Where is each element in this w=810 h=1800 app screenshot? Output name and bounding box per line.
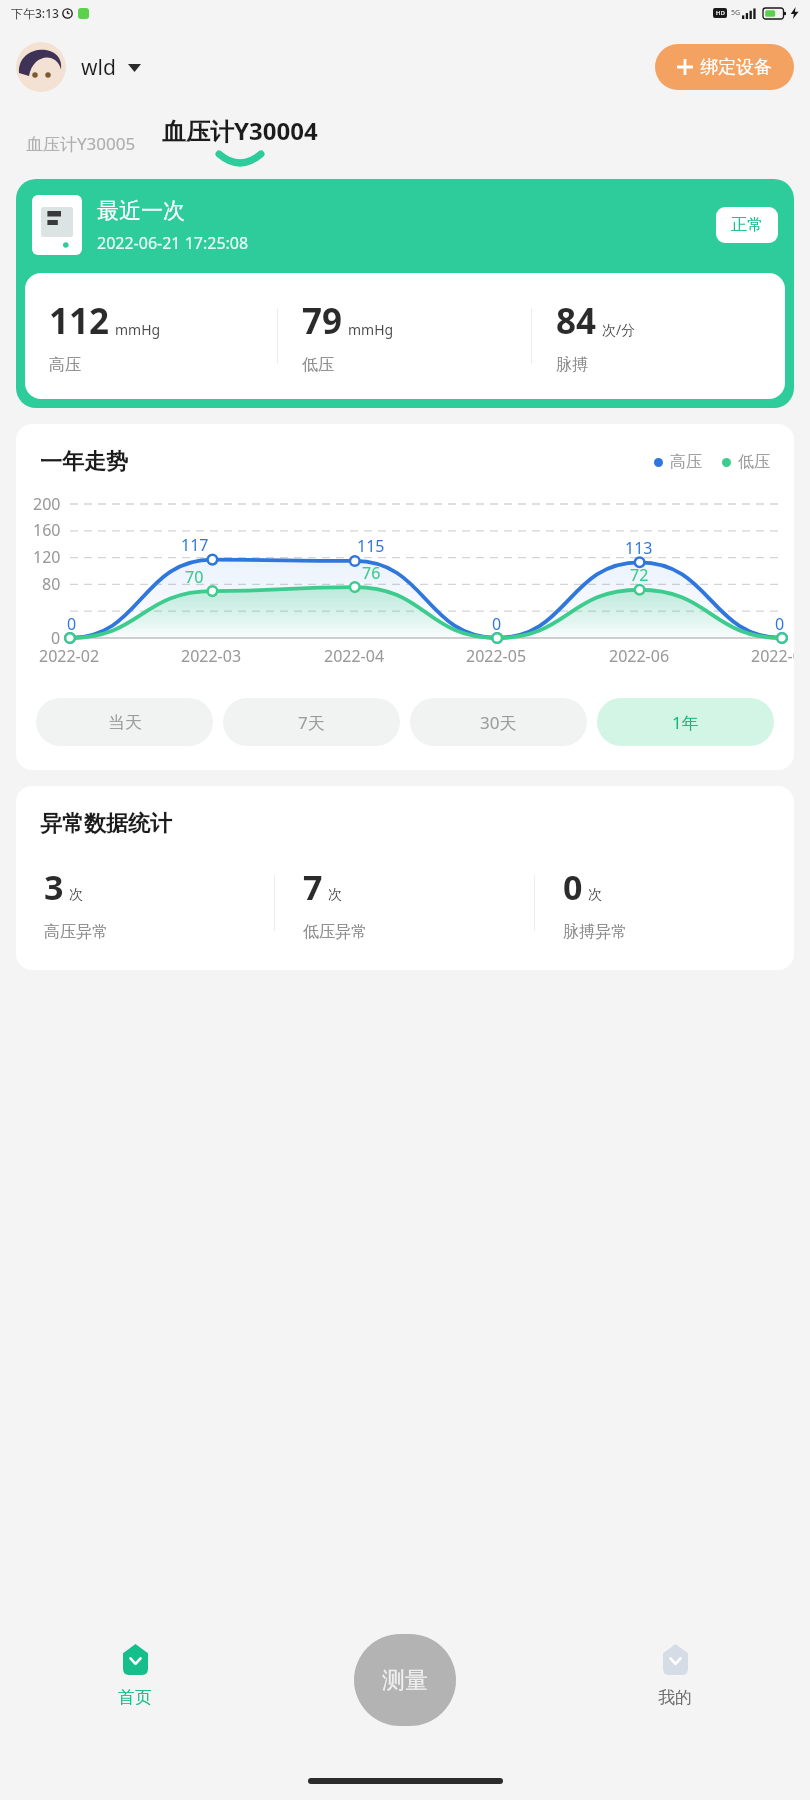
- staticText: 160: [33, 519, 61, 541]
- staticText: 当天: [108, 712, 142, 733]
- staticText: 120: [33, 546, 61, 568]
- staticText: 最近一次: [97, 197, 185, 225]
- button[interactable]: 最近一次: [16, 179, 794, 408]
- staticText: 3: [44, 864, 64, 910]
- staticText: 异常数据统计: [40, 810, 172, 838]
- staticText: 7天: [298, 711, 325, 734]
- staticText: 115: [357, 535, 385, 557]
- staticText: 次/分: [602, 320, 636, 339]
- staticText: 5G: [731, 8, 741, 18]
- staticText: 一年走势: [40, 448, 128, 476]
- staticText: 0: [563, 864, 583, 910]
- button[interactable]: 测量: [354, 1634, 456, 1726]
- staticText: 首页: [118, 1687, 152, 1708]
- staticText: mmHg: [115, 320, 161, 339]
- staticText: 80: [42, 573, 61, 595]
- staticText: 0: [51, 627, 61, 649]
- staticText: 正常: [731, 215, 763, 235]
- staticText: 0: [67, 613, 77, 635]
- staticText: 30天: [480, 711, 517, 734]
- button[interactable]: 当天: [36, 698, 213, 746]
- button[interactable]: 我的: [540, 1644, 810, 1708]
- button[interactable]: 绑定设备: [655, 44, 794, 90]
- staticText: 0: [492, 613, 502, 635]
- staticText: 2022-03: [181, 645, 242, 667]
- staticText: 84: [556, 297, 597, 345]
- staticText: 72: [630, 564, 649, 586]
- staticText: 112: [49, 297, 110, 345]
- staticText: 2022-05: [466, 645, 527, 667]
- staticText: 高压: [49, 355, 81, 375]
- staticText: 0: [775, 613, 785, 635]
- staticText: 2022-04: [324, 645, 385, 667]
- staticText: 70: [185, 566, 204, 588]
- staticText: 1年: [672, 711, 699, 734]
- staticText: 2022-07: [751, 645, 794, 667]
- button[interactable]: wld: [81, 53, 141, 82]
- button[interactable]: 血压计Y30004: [162, 114, 318, 163]
- staticText: 200: [33, 493, 61, 515]
- staticText: 测量: [382, 1666, 428, 1695]
- staticText: HD: [716, 9, 725, 17]
- staticText: 117: [181, 534, 209, 556]
- staticText: 我的: [658, 1687, 692, 1708]
- staticText: 低压异常: [303, 922, 367, 942]
- staticText: 79: [302, 297, 343, 345]
- staticText: mmHg: [348, 320, 394, 339]
- staticText: 次: [328, 886, 342, 904]
- staticText: 脉搏: [556, 355, 588, 375]
- staticText: 低压: [302, 355, 334, 375]
- button[interactable]: 首页: [0, 1644, 270, 1708]
- button[interactable]: 血压计Y30005: [26, 132, 136, 163]
- staticText: 次: [588, 886, 602, 904]
- staticText: 血压计Y30005: [26, 132, 136, 155]
- staticText: 下午3:13: [11, 5, 59, 21]
- staticText: 7: [303, 864, 323, 910]
- staticText: 绑定设备: [700, 56, 772, 79]
- staticText: 2022-06: [609, 645, 670, 667]
- button[interactable]: 30天: [410, 698, 587, 746]
- button[interactable]: 正常: [716, 207, 778, 243]
- staticText: 高压异常: [44, 922, 108, 942]
- staticText: 2022-02: [39, 645, 100, 667]
- staticText: wld: [81, 53, 116, 82]
- staticText: 113: [625, 537, 653, 559]
- staticText: 血压计Y30004: [162, 114, 318, 147]
- staticText: 2022-06-21 17:25:08: [97, 232, 249, 254]
- staticText: 次: [69, 886, 83, 904]
- button[interactable]: Profile avatar: [16, 42, 66, 92]
- staticText: 脉搏异常: [563, 922, 627, 942]
- staticText: 低压: [738, 452, 770, 472]
- button[interactable]: 1年: [597, 698, 774, 746]
- staticText: 高压: [670, 452, 702, 472]
- staticText: 76: [362, 562, 381, 584]
- button[interactable]: 7天: [223, 698, 400, 746]
